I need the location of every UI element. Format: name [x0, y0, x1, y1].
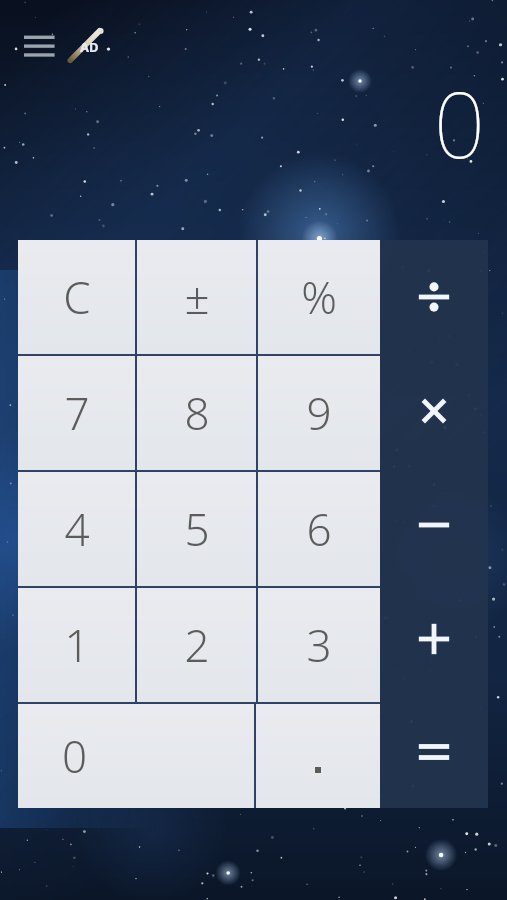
staticText: 3 [306, 615, 332, 675]
staticText: 4 [64, 499, 90, 559]
staticText: 0 [433, 62, 485, 185]
button[interactable]: Ad [68, 28, 112, 62]
button[interactable] [256, 704, 380, 808]
button[interactable]: 6 [258, 472, 380, 586]
staticText: 0 [62, 726, 88, 786]
button[interactable]: 2 [137, 588, 256, 702]
button[interactable]: C [18, 240, 135, 354]
button[interactable]: 5 [137, 472, 256, 586]
button[interactable]: Equals [380, 696, 488, 808]
button[interactable]: Divide [380, 240, 488, 354]
button[interactable]: Multiply [380, 354, 488, 468]
staticText: 1 [64, 615, 90, 675]
staticText: C [63, 267, 91, 327]
button[interactable]: 8 [137, 356, 256, 470]
button[interactable]: Add [380, 582, 488, 696]
button[interactable]: 4 [18, 472, 135, 586]
button[interactable]: % [258, 240, 380, 354]
staticText: 5 [184, 499, 210, 559]
staticText: 6 [306, 499, 332, 559]
button[interactable]: 0 [18, 704, 254, 808]
button[interactable]: 9 [258, 356, 380, 470]
staticText: 9 [306, 383, 332, 443]
button[interactable]: Menu [24, 33, 60, 59]
button[interactable]: 1 [18, 588, 135, 702]
staticText: 7 [64, 383, 90, 443]
button[interactable]: Subtract [380, 468, 488, 582]
staticText: 8 [184, 383, 210, 443]
button[interactable]: 3 [258, 588, 380, 702]
staticText: ± [184, 267, 210, 327]
button[interactable]: ± [137, 240, 256, 354]
staticText: 2 [184, 615, 210, 675]
staticText: AD [80, 38, 99, 56]
staticText: % [301, 267, 337, 327]
button[interactable]: 7 [18, 356, 135, 470]
